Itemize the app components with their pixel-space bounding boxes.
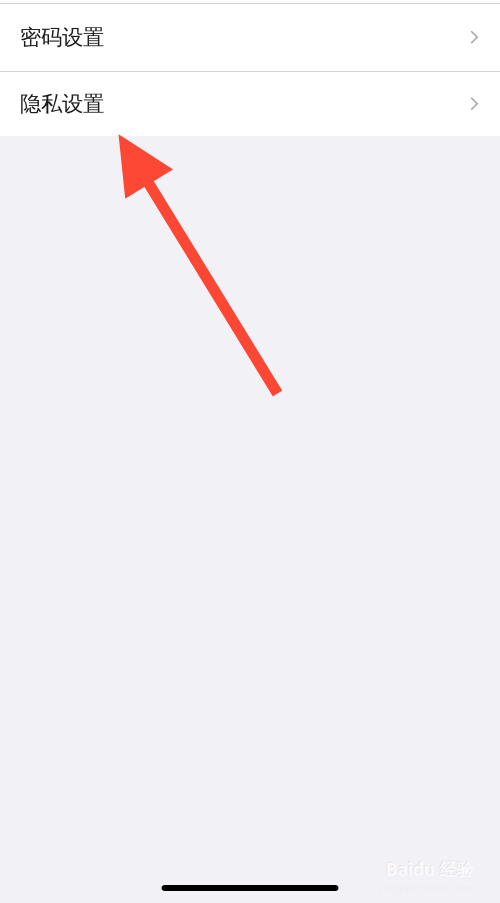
staticText: 密码设置 bbox=[20, 24, 104, 51]
button[interactable]: 隐私设置 bbox=[0, 72, 500, 136]
staticText: Baidu 经验 bbox=[385, 857, 473, 880]
staticText: 隐私设置 bbox=[20, 91, 104, 117]
button[interactable]: 密码设置 bbox=[0, 4, 500, 71]
